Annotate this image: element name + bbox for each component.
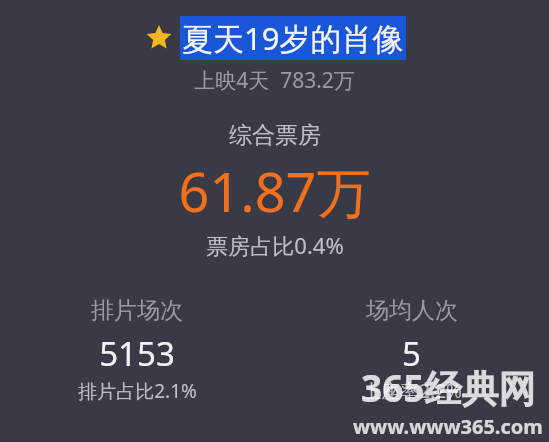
staticText: 夏天19岁的肖像 (182, 17, 404, 59)
button[interactable]: 排片场次 (0, 296, 274, 404)
staticText: 票房占比0.4% (206, 230, 344, 260)
staticText: 365经典网 (361, 362, 536, 413)
staticText: 排片占比2.1% (78, 378, 197, 404)
staticText: 场均人次 (366, 296, 458, 325)
staticText: 5153 (99, 331, 175, 376)
button[interactable]: 场均人次 (274, 296, 549, 404)
staticText: 排片场次 (91, 296, 183, 325)
staticText: 5 (402, 331, 421, 376)
staticText: 上座率2.2% (362, 378, 462, 404)
button[interactable]: Favorite star (144, 16, 406, 60)
staticText: 61.87万 (178, 154, 371, 228)
other: Favorite star (144, 23, 174, 53)
staticText: www.www365.com (353, 413, 543, 440)
staticText: 上映4天 783.2万 (194, 66, 355, 95)
staticText: 综合票房 (229, 121, 321, 150)
